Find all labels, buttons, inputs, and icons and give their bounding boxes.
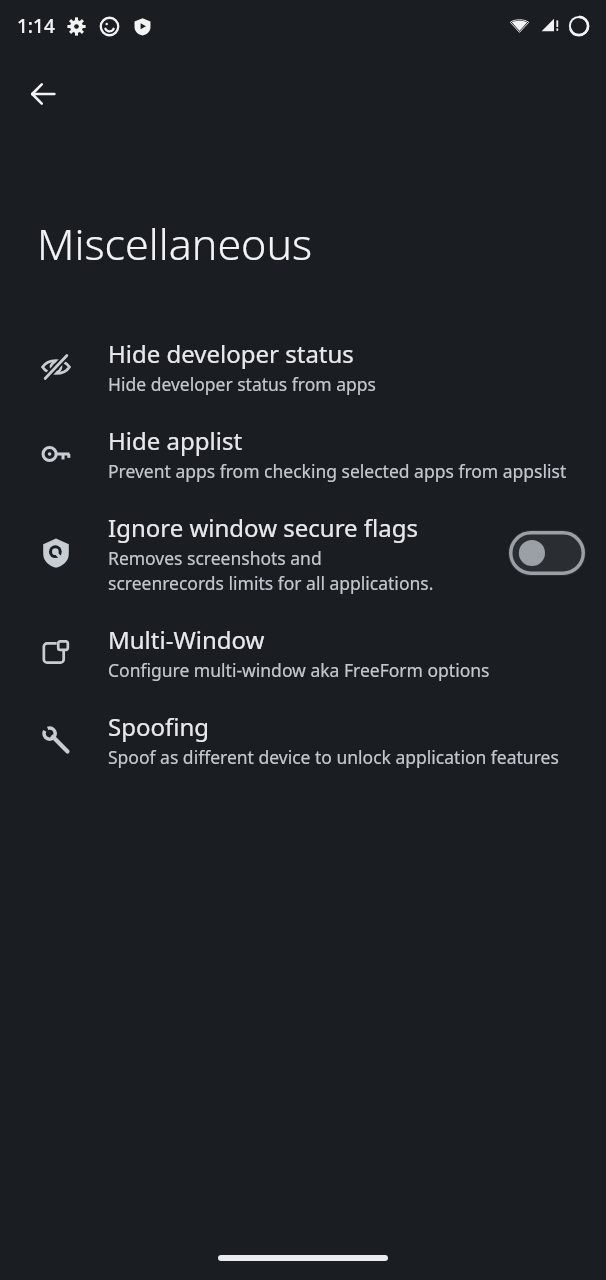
- staticText: 1:14: [17, 13, 55, 39]
- button[interactable]: Hide applist: [0, 410, 606, 497]
- staticText: Miscellaneous: [37, 214, 313, 273]
- staticText: Hide developer status from apps: [108, 372, 376, 396]
- staticText: Configure multi-window aka FreeForm opti…: [108, 658, 490, 682]
- staticText: Spoof as different device to unlock appl…: [108, 745, 559, 769]
- button[interactable]: Spoofing: [0, 696, 606, 783]
- button[interactable]: Back: [14, 65, 72, 123]
- button[interactable]: Multi-Window: [0, 609, 606, 696]
- staticText: Spoofing: [108, 710, 210, 743]
- staticText: Multi-Window: [108, 623, 265, 656]
- staticText: Removes screenshots and screenrecords li…: [108, 546, 438, 595]
- staticText: Prevent apps from checking selected apps…: [108, 459, 567, 483]
- staticText: Hide developer status: [108, 337, 354, 370]
- button[interactable]: Ignore window secure flags toggle: [508, 530, 586, 576]
- staticText: Hide applist: [108, 424, 243, 457]
- button[interactable]: Ignore window secure flags: [0, 497, 606, 609]
- staticText: Ignore window secure flags: [108, 511, 419, 544]
- button[interactable]: Hide developer status: [0, 323, 606, 410]
